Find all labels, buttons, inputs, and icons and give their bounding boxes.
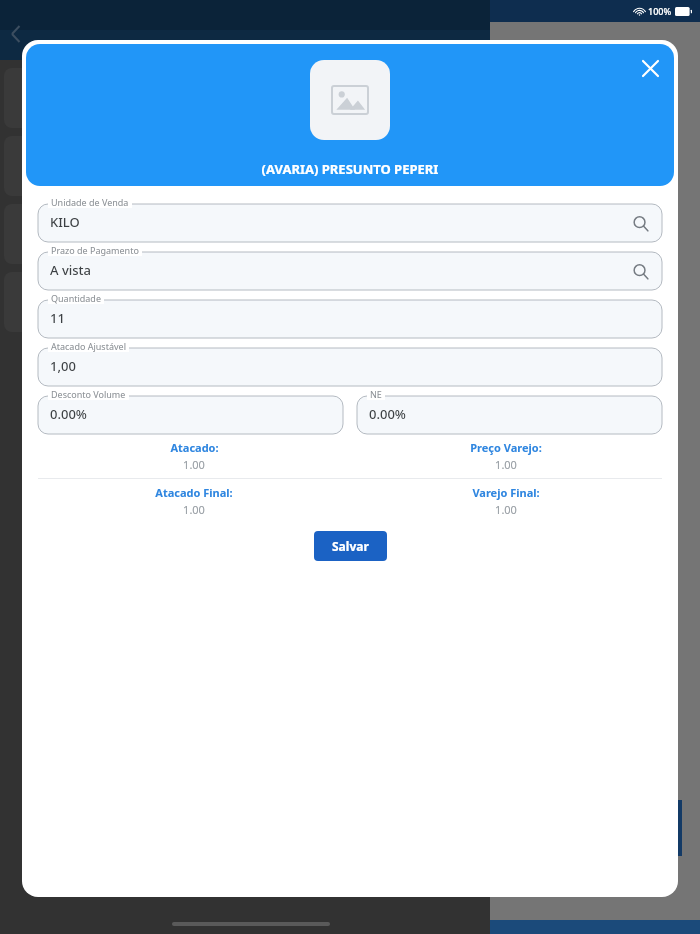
staticText: Preço Varejo: <box>470 440 542 455</box>
staticText: KILO <box>50 213 80 231</box>
staticText: Salvar <box>332 538 369 554</box>
staticText: Atacado: <box>170 440 219 455</box>
button[interactable]: Desconto Volume <box>38 388 343 434</box>
staticText: 1.00 <box>183 502 205 517</box>
staticText: 1.00 <box>495 502 517 517</box>
staticText: Atacado Final: <box>155 485 233 500</box>
button[interactable]: Fechar <box>634 52 666 84</box>
staticText: 0.00% <box>50 405 87 423</box>
staticText: 0.00% <box>369 405 406 423</box>
button[interactable]: Unidade de Venda <box>38 196 662 242</box>
staticText: Prazo de Pagamento <box>51 244 139 256</box>
button[interactable]: NE <box>357 388 662 434</box>
staticText: Quantidade <box>51 292 101 304</box>
button[interactable]: Prazo de Pagamento <box>38 244 662 290</box>
staticText: Varejo Final: <box>472 485 540 500</box>
button[interactable]: Salvar <box>314 531 387 561</box>
staticText: Unidade de Venda <box>51 196 129 208</box>
staticText: 1.00 <box>183 457 205 472</box>
staticText: A vista <box>50 261 91 279</box>
staticText: 1,00 <box>50 357 76 375</box>
button[interactable]: Atacado Ajustável <box>38 340 662 386</box>
staticText: NE <box>370 388 382 400</box>
button[interactable]: Quantidade <box>38 292 662 338</box>
staticText: 1.00 <box>495 457 517 472</box>
staticText: 100% <box>648 5 672 17</box>
staticText: Desconto Volume <box>51 388 126 400</box>
staticText: (AVARIA) PRESUNTO PEPERI <box>26 160 674 178</box>
staticText: 11 <box>50 309 65 327</box>
staticText: Atacado Ajustável <box>51 340 126 352</box>
